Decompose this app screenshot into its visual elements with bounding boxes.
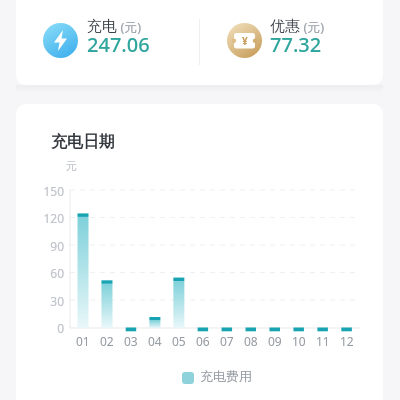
staticText: 元 [66, 159, 77, 173]
staticText: 90 [50, 238, 64, 254]
staticText: 07 [220, 333, 234, 349]
staticText: 10 [292, 333, 306, 349]
staticText: 充电费用 [200, 368, 252, 384]
staticText: 04 [148, 333, 162, 349]
staticText: 充电 [87, 17, 117, 36]
staticText: 150 [43, 183, 64, 199]
staticText: 充电日期 [51, 132, 115, 152]
staticText: 08 [244, 333, 258, 349]
staticText: 77.32 [270, 31, 322, 58]
staticText: 05 [172, 333, 186, 349]
staticText: 11 [316, 333, 330, 349]
staticText: 120 [43, 210, 64, 226]
staticText: 247.06 [87, 31, 150, 58]
staticText: (元) [117, 18, 142, 36]
staticText: 30 [50, 293, 64, 309]
staticText: 06 [196, 333, 210, 349]
staticText: 02 [100, 333, 114, 349]
staticText: 01 [76, 333, 90, 349]
staticText: 优惠 [270, 17, 300, 36]
staticText: 60 [50, 265, 64, 281]
staticText: ¥ [242, 34, 248, 48]
staticText: (元) [300, 18, 325, 36]
staticText: 12 [340, 333, 354, 349]
staticText: 09 [268, 333, 282, 349]
staticText: 03 [124, 333, 138, 349]
staticText: 0 [57, 320, 64, 336]
